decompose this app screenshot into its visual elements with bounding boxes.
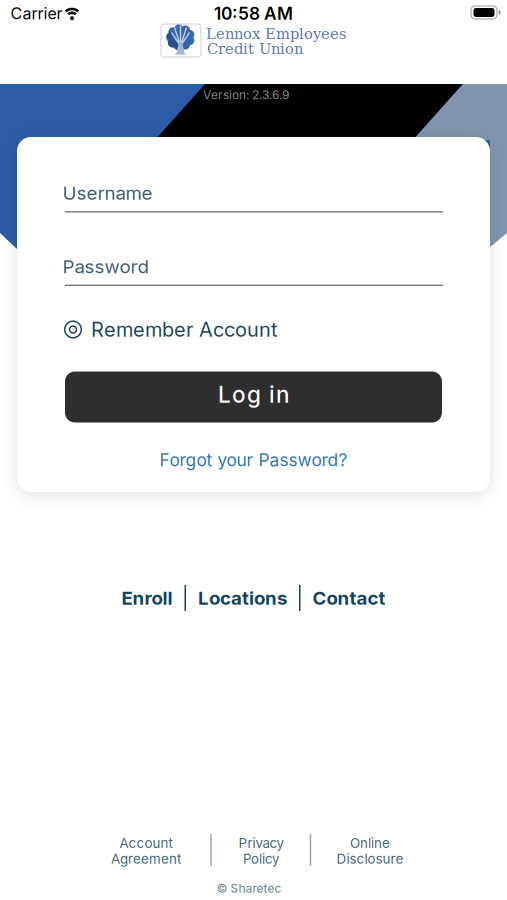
button[interactable]: Online <box>336 835 403 867</box>
button[interactable]: Remember Account <box>64 318 278 341</box>
button[interactable]: Password <box>65 236 443 286</box>
staticText: Agreement <box>111 851 181 867</box>
staticText: Lennox Employees <box>206 25 347 43</box>
staticText: Credit Union <box>207 40 303 58</box>
button[interactable]: Account <box>111 835 181 867</box>
staticText: Carrier <box>10 4 62 23</box>
staticText: Log in <box>218 381 289 408</box>
staticText: Enroll <box>121 587 172 609</box>
button[interactable]: Username <box>65 162 443 212</box>
staticText: © Sharetec <box>216 881 281 896</box>
staticText: Version: 2.3.6.9 <box>203 88 289 102</box>
staticText: Account <box>119 835 172 851</box>
staticText: Password <box>62 255 148 277</box>
staticText: Disclosure <box>336 851 403 867</box>
staticText: Online <box>350 835 390 851</box>
staticText: Forgot your Password? <box>159 450 347 470</box>
button[interactable]: Forgot your Password? <box>159 450 347 470</box>
staticText: Policy <box>243 851 279 867</box>
staticText: Locations <box>198 587 287 609</box>
button[interactable]: Privacy <box>238 835 283 867</box>
button[interactable]: Enroll <box>121 585 385 611</box>
staticText: 10:58 AM <box>214 3 293 24</box>
staticText: Contact <box>312 587 385 609</box>
button[interactable]: Log in <box>65 371 442 422</box>
staticText: Privacy <box>238 835 283 851</box>
staticText: Username <box>62 182 152 204</box>
staticText: Remember Account <box>91 318 278 341</box>
